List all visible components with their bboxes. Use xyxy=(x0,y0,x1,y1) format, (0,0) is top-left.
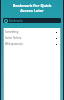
button[interactable]: Something xyxy=(4,29,60,35)
staticText: Something xyxy=(5,30,19,34)
other: Navigation menu xyxy=(4,19,8,23)
staticText: Some Techno xyxy=(5,36,22,40)
staticText: Bookmark For Quick xyxy=(0,3,64,8)
button[interactable]: Web javascript xyxy=(4,41,60,47)
staticText: Bookmarks xyxy=(9,19,23,23)
button[interactable]: Some Techno xyxy=(4,35,60,41)
staticText: Web javascript xyxy=(5,42,23,46)
button[interactable]: Navigation menu xyxy=(3,18,61,23)
staticText: Access Later xyxy=(0,8,64,13)
